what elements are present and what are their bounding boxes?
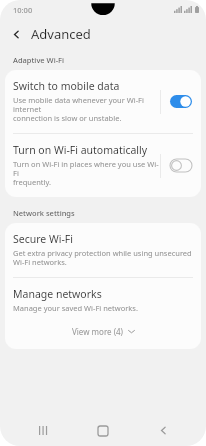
staticText: Manage networks: [13, 287, 102, 301]
staticText: Manage your saved Wi-Fi networks.: [13, 303, 138, 313]
staticText: View more (4): [72, 326, 124, 337]
button[interactable]: Back: [146, 415, 180, 446]
staticText: Adaptive Wi-Fi: [13, 55, 65, 65]
button[interactable]: Off: [168, 157, 193, 174]
staticText: 10:00: [13, 5, 33, 15]
button[interactable]: Recents: [26, 415, 60, 446]
staticText: Use mobile data whenever your Wi-Fi inte…: [13, 95, 160, 124]
button[interactable]: On: [168, 93, 193, 110]
button[interactable]: Home: [86, 415, 120, 446]
button[interactable]: Secure Wi-Fi: [5, 223, 201, 277]
staticText: Advanced: [31, 25, 91, 43]
staticText: Get extra privacy protection while using…: [13, 248, 192, 268]
button[interactable]: View more (4): [5, 322, 201, 349]
staticText: Secure Wi-Fi: [13, 232, 74, 246]
button[interactable]: Turn on Wi-Fi automatically: [5, 134, 201, 197]
staticText: Network settings: [13, 208, 75, 218]
staticText: Turn on Wi-Fi automatically: [13, 143, 148, 157]
button[interactable]: Switch to mobile data: [5, 70, 201, 133]
button[interactable]: Manage networks: [5, 278, 201, 322]
staticText: Turn on Wi-Fi in places where you use Wi…: [13, 159, 160, 188]
button[interactable]: Back: [7, 25, 26, 44]
staticText: Switch to mobile data: [13, 79, 120, 93]
